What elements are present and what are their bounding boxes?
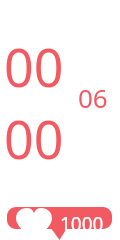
staticText: 06 (78, 80, 108, 115)
staticText: 00 (4, 31, 64, 102)
staticText: 00 (4, 103, 64, 174)
button[interactable]: Likes: 1000 (7, 207, 112, 240)
staticText: 1000 (60, 211, 104, 237)
button[interactable]: 00 (0, 31, 120, 174)
